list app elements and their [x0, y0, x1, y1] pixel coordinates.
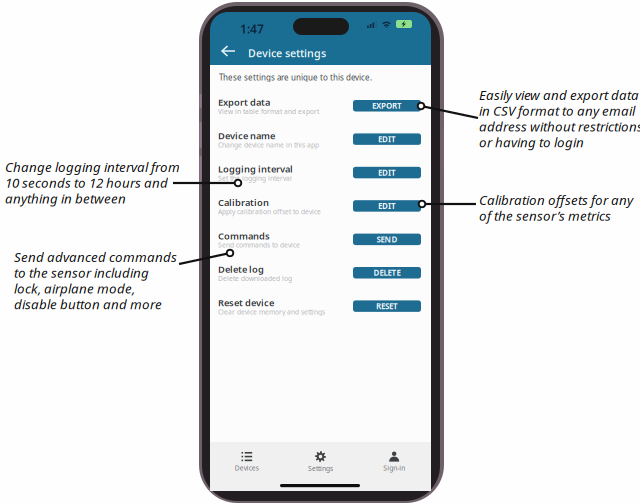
staticText: Logging interval — [218, 163, 293, 175]
staticText: Devices — [235, 464, 259, 472]
staticText: address without restrictions — [479, 117, 640, 135]
staticText: Calibration offsets for any — [479, 191, 633, 209]
staticText: 10 seconds to 12 hours and — [5, 174, 168, 191]
button[interactable]: EDIT — [353, 200, 421, 212]
staticText: or having to login — [479, 133, 584, 151]
button[interactable]: Devices — [210, 449, 284, 475]
button[interactable]: Settings — [284, 449, 357, 475]
staticText: Device name — [218, 129, 275, 142]
staticText: Send commands to device — [218, 241, 300, 249]
staticText: EDIT — [378, 201, 396, 211]
staticText: Commands — [218, 230, 270, 242]
staticText: RESET — [376, 301, 398, 311]
staticText: Reset device — [218, 296, 274, 309]
staticText: Clear device memory and settings — [218, 307, 325, 316]
staticText: anything in between — [5, 189, 126, 207]
staticText: Change device name in this app — [218, 140, 319, 149]
staticText: Calibration — [218, 196, 269, 209]
staticText: of the sensor’s metrics — [479, 207, 611, 224]
staticText: in CSV format to any email — [479, 102, 635, 119]
staticText: Easily view and export data — [479, 86, 639, 104]
button[interactable]: Back — [218, 40, 240, 62]
staticText: Apply calibration offset to device — [218, 207, 321, 216]
button[interactable]: EDIT — [353, 167, 421, 178]
staticText: Change logging interval from — [5, 158, 180, 176]
button[interactable]: Sign-in — [357, 449, 431, 475]
staticText: 1:47 — [240, 21, 264, 37]
staticText: SEND — [376, 234, 397, 245]
staticText: disable button and more — [14, 295, 162, 313]
button[interactable]: SEND — [353, 234, 421, 245]
staticText: Delete log — [218, 263, 264, 275]
staticText: These settings are unique to this device… — [219, 72, 372, 83]
staticText: Delete downloaded log — [218, 274, 292, 283]
staticText: EDIT — [378, 134, 396, 144]
staticText: Send advanced commands — [14, 248, 177, 266]
staticText: lock, airplane mode, — [14, 279, 135, 297]
staticText: Export data — [218, 96, 270, 108]
button[interactable]: EDIT — [353, 133, 421, 145]
staticText: DELETE — [373, 267, 400, 278]
button[interactable]: RESET — [353, 300, 421, 312]
staticText: EXPORT — [372, 100, 402, 111]
staticText: View in table format and export — [218, 107, 319, 116]
staticText: Device settings — [248, 46, 326, 60]
button[interactable]: EXPORT — [353, 100, 421, 111]
staticText: Sign-in — [383, 464, 405, 472]
button[interactable]: DELETE — [353, 267, 421, 278]
staticText: EDIT — [378, 167, 396, 178]
staticText: Set the logging interval — [218, 174, 292, 183]
staticText: Settings — [308, 464, 333, 473]
staticText: to the sensor including — [14, 264, 149, 281]
